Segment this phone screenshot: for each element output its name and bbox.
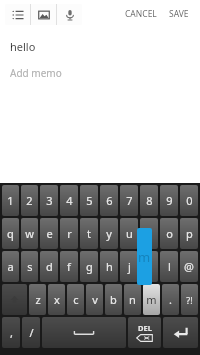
other: Space <box>41 316 127 349</box>
staticText: @ <box>184 259 194 274</box>
button[interactable]: b <box>105 284 122 315</box>
button[interactable]: e <box>40 218 58 249</box>
staticText: f <box>67 259 71 274</box>
staticText: g <box>86 259 93 274</box>
staticText: , <box>10 325 13 340</box>
staticText: c <box>73 292 79 307</box>
button[interactable]: s <box>21 251 38 282</box>
staticText: DEL <box>138 323 152 333</box>
button[interactable]: j <box>120 251 138 282</box>
staticText: l <box>168 259 171 274</box>
staticText: ?! <box>186 294 193 306</box>
button[interactable]: @ <box>180 251 198 282</box>
button[interactable]: . <box>162 284 179 315</box>
button[interactable]: 6 <box>100 185 118 216</box>
button[interactable]: x <box>48 284 65 315</box>
staticText: m <box>146 292 157 307</box>
button[interactable] <box>163 317 198 348</box>
button[interactable]: ?! <box>181 284 198 315</box>
button[interactable]: DEL <box>128 317 161 348</box>
button[interactable]: 1 <box>2 185 19 216</box>
button[interactable]: SAVE <box>163 3 195 25</box>
button[interactable]: Voice input <box>57 4 82 25</box>
staticText: w <box>25 226 34 241</box>
button[interactable] <box>2 284 27 315</box>
button[interactable]: / <box>22 317 40 348</box>
staticText: hello <box>10 39 36 54</box>
other: Delete <box>127 316 162 349</box>
staticText: m <box>138 248 151 266</box>
staticText: s <box>27 259 33 274</box>
button[interactable]: k <box>140 251 158 282</box>
button[interactable]: v <box>86 284 103 315</box>
button[interactable]: d <box>40 251 58 282</box>
button[interactable]: 8 <box>140 185 158 216</box>
other: Enter <box>162 316 199 349</box>
staticText: i <box>148 226 151 241</box>
button[interactable] <box>42 317 126 348</box>
button[interactable]: , <box>2 317 20 348</box>
staticText: 6 <box>106 193 113 208</box>
staticText: v <box>92 292 98 307</box>
button[interactable]: u <box>120 218 138 249</box>
button[interactable]: i <box>140 218 158 249</box>
staticText: 1 <box>7 193 14 208</box>
staticText: z <box>35 292 41 307</box>
button[interactable]: Insert image <box>31 4 56 25</box>
staticText: j <box>128 259 131 274</box>
staticText: x <box>54 292 60 307</box>
button[interactable]: 5 <box>80 185 98 216</box>
staticText: 0 <box>186 193 193 208</box>
button[interactable]: Checklist <box>5 4 30 25</box>
staticText: 7 <box>126 193 133 208</box>
button[interactable]: h <box>100 251 118 282</box>
staticText: . <box>169 292 172 307</box>
staticText: h <box>106 259 113 274</box>
staticText: 3 <box>46 193 53 208</box>
button[interactable]: y <box>100 218 118 249</box>
staticText: d <box>46 259 53 274</box>
staticText: p <box>186 226 193 241</box>
staticText: SAVE <box>169 8 189 20</box>
staticText: n <box>129 292 136 307</box>
staticText: e <box>46 226 53 241</box>
button[interactable]: 7 <box>120 185 138 216</box>
staticText: t <box>87 226 91 241</box>
button[interactable]: 9 <box>160 185 178 216</box>
button[interactable]: w <box>21 218 38 249</box>
button[interactable]: q <box>2 218 19 249</box>
button[interactable]: a <box>2 251 19 282</box>
button[interactable]: o <box>160 218 178 249</box>
button[interactable]: p <box>180 218 198 249</box>
button[interactable]: t <box>80 218 98 249</box>
staticText: / <box>29 325 34 340</box>
staticText: Add memo <box>10 66 62 80</box>
staticText: r <box>67 226 72 241</box>
button[interactable]: z <box>29 284 46 315</box>
button[interactable]: l <box>160 251 178 282</box>
staticText: q <box>7 226 14 241</box>
staticText: u <box>126 226 133 241</box>
button[interactable]: 4 <box>60 185 78 216</box>
button[interactable]: n <box>124 284 141 315</box>
staticText: y <box>106 226 112 241</box>
staticText: b <box>110 292 117 307</box>
staticText: 4 <box>66 193 73 208</box>
staticText: k <box>146 259 152 274</box>
button[interactable]: 2 <box>21 185 38 216</box>
staticText: o <box>166 226 173 241</box>
button[interactable]: f <box>60 251 78 282</box>
staticText: 8 <box>146 193 153 208</box>
other: Shift <box>1 283 28 316</box>
staticText: 5 <box>86 193 93 208</box>
button[interactable]: r <box>60 218 78 249</box>
button[interactable]: 0 <box>180 185 198 216</box>
button[interactable]: 3 <box>40 185 58 216</box>
button[interactable]: CANCEL <box>119 3 163 25</box>
staticText: a <box>7 259 14 274</box>
staticText: CANCEL <box>125 8 157 20</box>
staticText: 2 <box>26 193 33 208</box>
button[interactable]: g <box>80 251 98 282</box>
button[interactable]: m <box>143 284 160 315</box>
button[interactable]: c <box>67 284 84 315</box>
